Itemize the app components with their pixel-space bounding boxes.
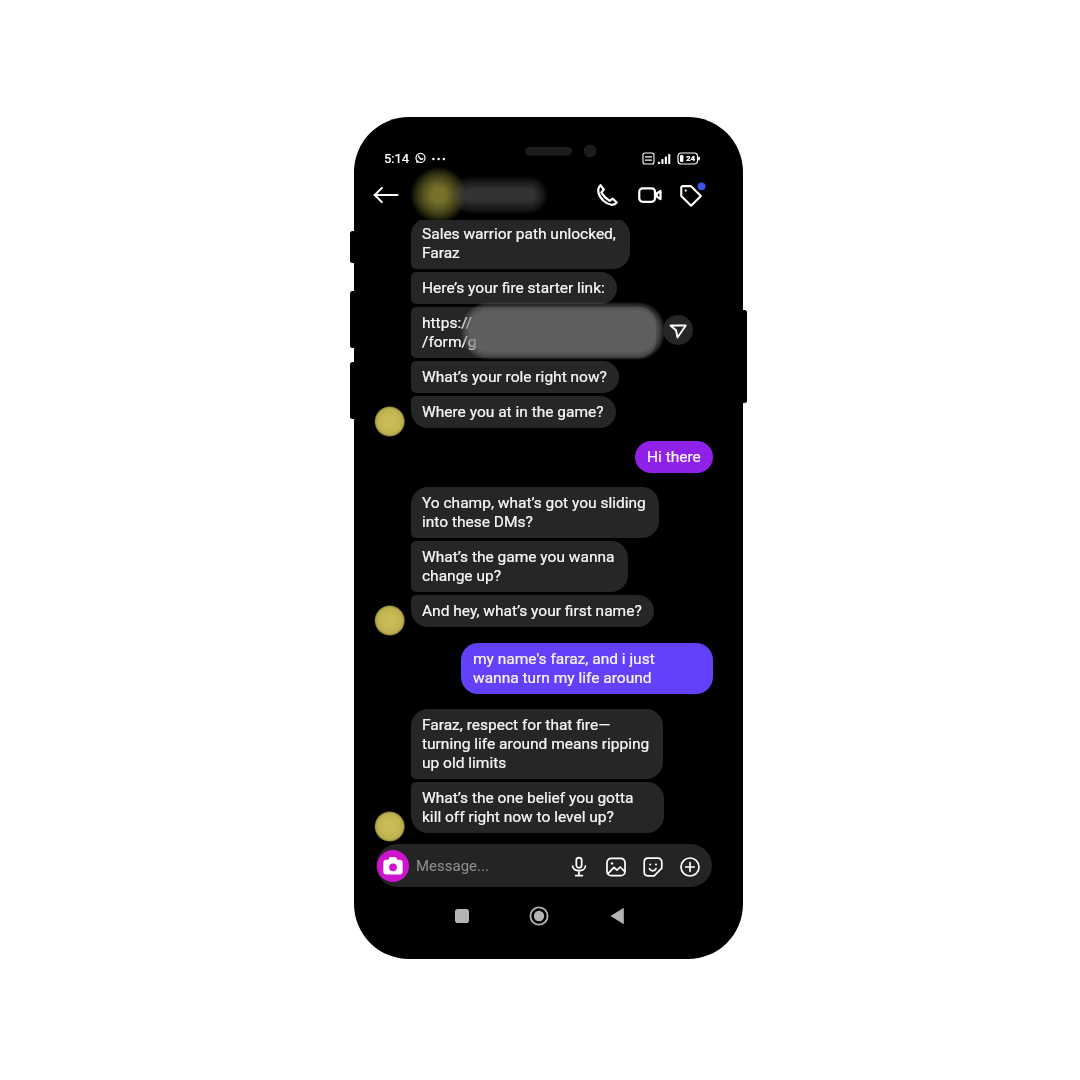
- staticText: And hey, what’s your first name?: [422, 601, 642, 620]
- button[interactable]: Voice message: [567, 855, 591, 879]
- staticText: Here’s your fire starter link:: [422, 278, 605, 297]
- button[interactable]: More: [678, 855, 702, 879]
- staticText: What’s your role right now?: [422, 367, 607, 386]
- button[interactable]: my name's faraz, and i just wanna turn m…: [461, 643, 713, 694]
- staticText: What’s the one belief you gotta kill off…: [422, 788, 652, 826]
- staticText: Sales warrior path unlocked, Faraz: [422, 224, 618, 262]
- button[interactable]: Audio call: [591, 180, 621, 210]
- staticText: Hi there: [647, 447, 701, 466]
- button[interactable]: Faraz, respect for that fire—turning lif…: [411, 709, 663, 779]
- staticText: my name's faraz, and i just wanna turn m…: [473, 649, 701, 687]
- button[interactable]: Home: [521, 898, 557, 934]
- button[interactable]: Where you at in the game?: [411, 396, 616, 428]
- staticText: Faraz, respect for that fire—turning lif…: [422, 715, 651, 772]
- button[interactable]: Send: [663, 315, 693, 345]
- staticText: 24: [686, 154, 696, 163]
- button[interactable]: Yo champ, what’s got you sliding into th…: [411, 487, 659, 538]
- button[interactable]: Offers: [678, 181, 706, 209]
- button[interactable]: What’s your role right now?: [411, 361, 619, 393]
- button[interactable]: Camera: [377, 850, 409, 882]
- button[interactable]: Back: [600, 898, 636, 934]
- button[interactable]: Gallery: [604, 855, 628, 879]
- staticText: Yo champ, what’s got you sliding into th…: [422, 493, 647, 531]
- button[interactable]: What’s the one belief you gotta kill off…: [411, 782, 664, 833]
- button[interactable]: [414, 170, 564, 220]
- button[interactable]: Recents: [444, 898, 480, 934]
- button[interactable]: Here’s your fire starter link:: [411, 272, 617, 304]
- button[interactable]: Hi there: [635, 441, 713, 473]
- staticText: Message...: [416, 857, 489, 875]
- button[interactable]: Sales warrior path unlocked, Faraz: [411, 220, 630, 269]
- button[interactable]: https:// /form/g: [411, 307, 656, 358]
- staticText: Where you at in the game?: [422, 402, 604, 421]
- button[interactable]: Sticker: [641, 855, 665, 879]
- staticText: 5:14: [384, 151, 410, 166]
- button[interactable]: What’s the game you wanna change up?: [411, 541, 628, 592]
- staticText: https:// /form/g: [422, 313, 477, 351]
- button[interactable]: Back: [372, 181, 400, 209]
- button[interactable]: And hey, what’s your first name?: [411, 595, 654, 627]
- button[interactable]: Video call: [635, 180, 665, 210]
- staticText: What’s the game you wanna change up?: [422, 547, 616, 585]
